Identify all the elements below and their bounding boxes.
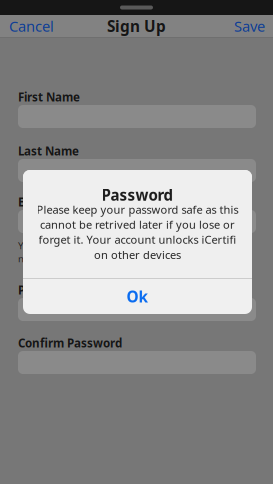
- staticText: forget it. Your account unlocks iCertifi: [38, 232, 236, 247]
- button[interactable]: Save: [226, 15, 273, 37]
- button[interactable]: Ok: [23, 279, 252, 314]
- staticText: Email: [18, 194, 48, 210]
- staticText: Password: [101, 185, 173, 205]
- staticText: Last Name: [18, 143, 79, 159]
- staticText: Confirm Password: [18, 335, 122, 351]
- button[interactable]: Cancel: [0, 15, 62, 37]
- staticText: Ok: [126, 286, 148, 307]
- staticText: Sign Up: [107, 16, 166, 36]
- staticText: on other devices: [94, 247, 181, 262]
- staticText: Save: [234, 16, 265, 36]
- staticText: Your email is your username and: [18, 239, 162, 252]
- staticText: cannot be retrived later if you lose or: [40, 217, 235, 232]
- staticText: Password: [18, 282, 73, 298]
- staticText: Cancel: [9, 16, 54, 36]
- staticText: First Name: [18, 89, 80, 105]
- staticText: Please keep your password safe as this: [36, 202, 238, 217]
- staticText: needs to be verified: [18, 252, 104, 265]
